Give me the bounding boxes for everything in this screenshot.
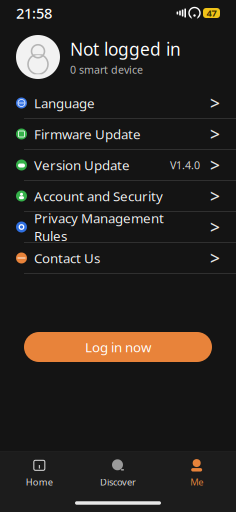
- button[interactable]: Me: [157, 452, 236, 494]
- staticText: 47: [206, 7, 216, 19]
- staticText: 0 smart device: [70, 62, 143, 77]
- button[interactable]: Firmware Update: [0, 119, 236, 149]
- staticText: Privacy Management Rules: [34, 209, 164, 245]
- staticText: Firmware Update: [34, 125, 141, 143]
- button[interactable]: Log in now: [24, 332, 212, 362]
- button[interactable]: Version Update: [0, 150, 236, 180]
- staticText: >: [210, 91, 220, 114]
- staticText: Language: [34, 94, 95, 112]
- staticText: >: [210, 153, 220, 176]
- staticText: Log in now: [85, 338, 151, 356]
- staticText: Home: [26, 476, 53, 488]
- button[interactable]: Not logged in: [0, 26, 236, 88]
- staticText: Contact Us: [34, 249, 100, 267]
- staticText: >: [210, 215, 220, 238]
- staticText: Discover: [100, 476, 136, 488]
- button[interactable]: Contact Us: [0, 243, 236, 273]
- staticText: 21:58: [16, 3, 52, 23]
- staticText: >: [210, 246, 220, 269]
- button[interactable]: Account and Security: [0, 181, 236, 211]
- button[interactable]: Privacy Management Rules: [0, 212, 236, 242]
- staticText: >: [210, 122, 220, 145]
- staticText: Not logged in: [70, 37, 181, 60]
- button[interactable]: Discover: [79, 452, 157, 494]
- staticText: >: [210, 184, 220, 207]
- staticText: V1.4.0: [170, 158, 200, 172]
- staticText: Me: [190, 476, 203, 488]
- button[interactable]: Language: [0, 88, 236, 118]
- button[interactable]: Home: [0, 452, 79, 494]
- staticText: Version Update: [34, 156, 130, 174]
- staticText: Account and Security: [34, 187, 163, 205]
